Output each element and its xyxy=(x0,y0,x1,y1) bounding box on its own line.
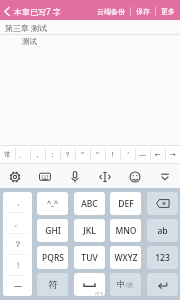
staticText: ‘ xyxy=(127,150,129,160)
button[interactable]: PQRS xyxy=(37,246,68,269)
staticText: 本章已写7 字 xyxy=(14,6,61,17)
staticText: PQRS xyxy=(42,252,64,264)
staticText: 讯飞 xyxy=(95,291,103,296)
button[interactable]: 123 xyxy=(147,246,178,269)
staticText: 符 xyxy=(48,279,58,291)
button[interactable] xyxy=(120,164,150,188)
button[interactable]: ^_^ xyxy=(37,192,68,215)
staticText: ^_^ xyxy=(47,199,59,209)
staticText: ？ xyxy=(14,239,22,249)
button[interactable]: JKL xyxy=(74,219,105,242)
staticText: ABC xyxy=(81,198,98,210)
staticText: → xyxy=(170,151,176,159)
button[interactable]: TUV xyxy=(74,246,105,269)
button[interactable]: ab xyxy=(147,219,178,242)
staticText: WXYZ xyxy=(114,252,138,264)
staticText: ← xyxy=(155,151,161,159)
staticText: 中/英 xyxy=(117,279,134,290)
button[interactable] xyxy=(30,164,60,188)
button[interactable]: 中/英 xyxy=(110,273,141,296)
button[interactable]: 云端备份 xyxy=(97,7,125,16)
button[interactable]: — xyxy=(135,146,150,163)
button[interactable]: ？ xyxy=(3,233,32,254)
staticText: ！ xyxy=(14,260,22,270)
button[interactable] xyxy=(150,164,180,188)
button[interactable]: ， xyxy=(3,192,32,212)
button[interactable]: ， xyxy=(30,146,45,163)
staticText: ” xyxy=(96,150,99,160)
staticText: ， xyxy=(14,197,22,207)
button[interactable]: GHI xyxy=(37,219,68,242)
staticText: 123 xyxy=(155,252,170,264)
staticText: JKL xyxy=(83,225,96,237)
button[interactable] xyxy=(147,192,178,215)
button[interactable]: WXYZ xyxy=(110,246,141,269)
staticText: 第三章 测试 xyxy=(5,22,48,33)
button[interactable] xyxy=(0,3,13,20)
staticText: 测试 xyxy=(22,37,37,46)
button[interactable]: 符 xyxy=(37,273,68,296)
staticText: 、 xyxy=(19,150,26,159)
staticText: DEF xyxy=(118,198,134,210)
staticText: 常 xyxy=(4,150,11,159)
button[interactable]: 。 xyxy=(3,212,32,233)
staticText: TUV xyxy=(81,252,98,264)
button[interactable]: ← xyxy=(150,146,165,163)
staticText: GHI xyxy=(45,225,61,237)
button[interactable] xyxy=(90,164,120,188)
staticText: 。 xyxy=(14,218,22,228)
button[interactable]: 、 xyxy=(15,146,30,163)
staticText: ， xyxy=(34,150,41,159)
staticText: — xyxy=(139,150,146,160)
button[interactable]: — xyxy=(3,275,32,296)
button[interactable]: ！ xyxy=(105,146,120,163)
button[interactable] xyxy=(0,164,30,188)
staticText: ？ xyxy=(64,150,71,159)
button[interactable]: ！ xyxy=(3,254,32,275)
button[interactable]: 保存 xyxy=(136,7,150,16)
button[interactable]: ” xyxy=(90,146,105,163)
button[interactable]: 讯飞 xyxy=(74,273,105,296)
button[interactable] xyxy=(147,273,178,296)
staticText: ： xyxy=(49,150,56,159)
button[interactable]: “ xyxy=(75,146,90,163)
button[interactable]: 更多 xyxy=(161,7,175,16)
button[interactable]: DEF xyxy=(110,192,141,215)
button[interactable]: ‘ xyxy=(120,146,135,163)
staticText: ab xyxy=(157,225,168,237)
button[interactable]: ？ xyxy=(60,146,75,163)
staticText: “ xyxy=(81,150,84,160)
button[interactable]: 常 xyxy=(0,146,15,163)
button[interactable]: 第三章 测试 xyxy=(0,20,180,35)
button[interactable]: → xyxy=(165,146,180,163)
staticText: ！ xyxy=(109,150,116,159)
button[interactable]: ： xyxy=(45,146,60,163)
button[interactable]: MNO xyxy=(110,219,141,242)
button[interactable] xyxy=(60,164,90,188)
staticText: — xyxy=(14,280,22,291)
button[interactable]: ABC xyxy=(74,192,105,215)
staticText: MNO xyxy=(115,225,137,237)
